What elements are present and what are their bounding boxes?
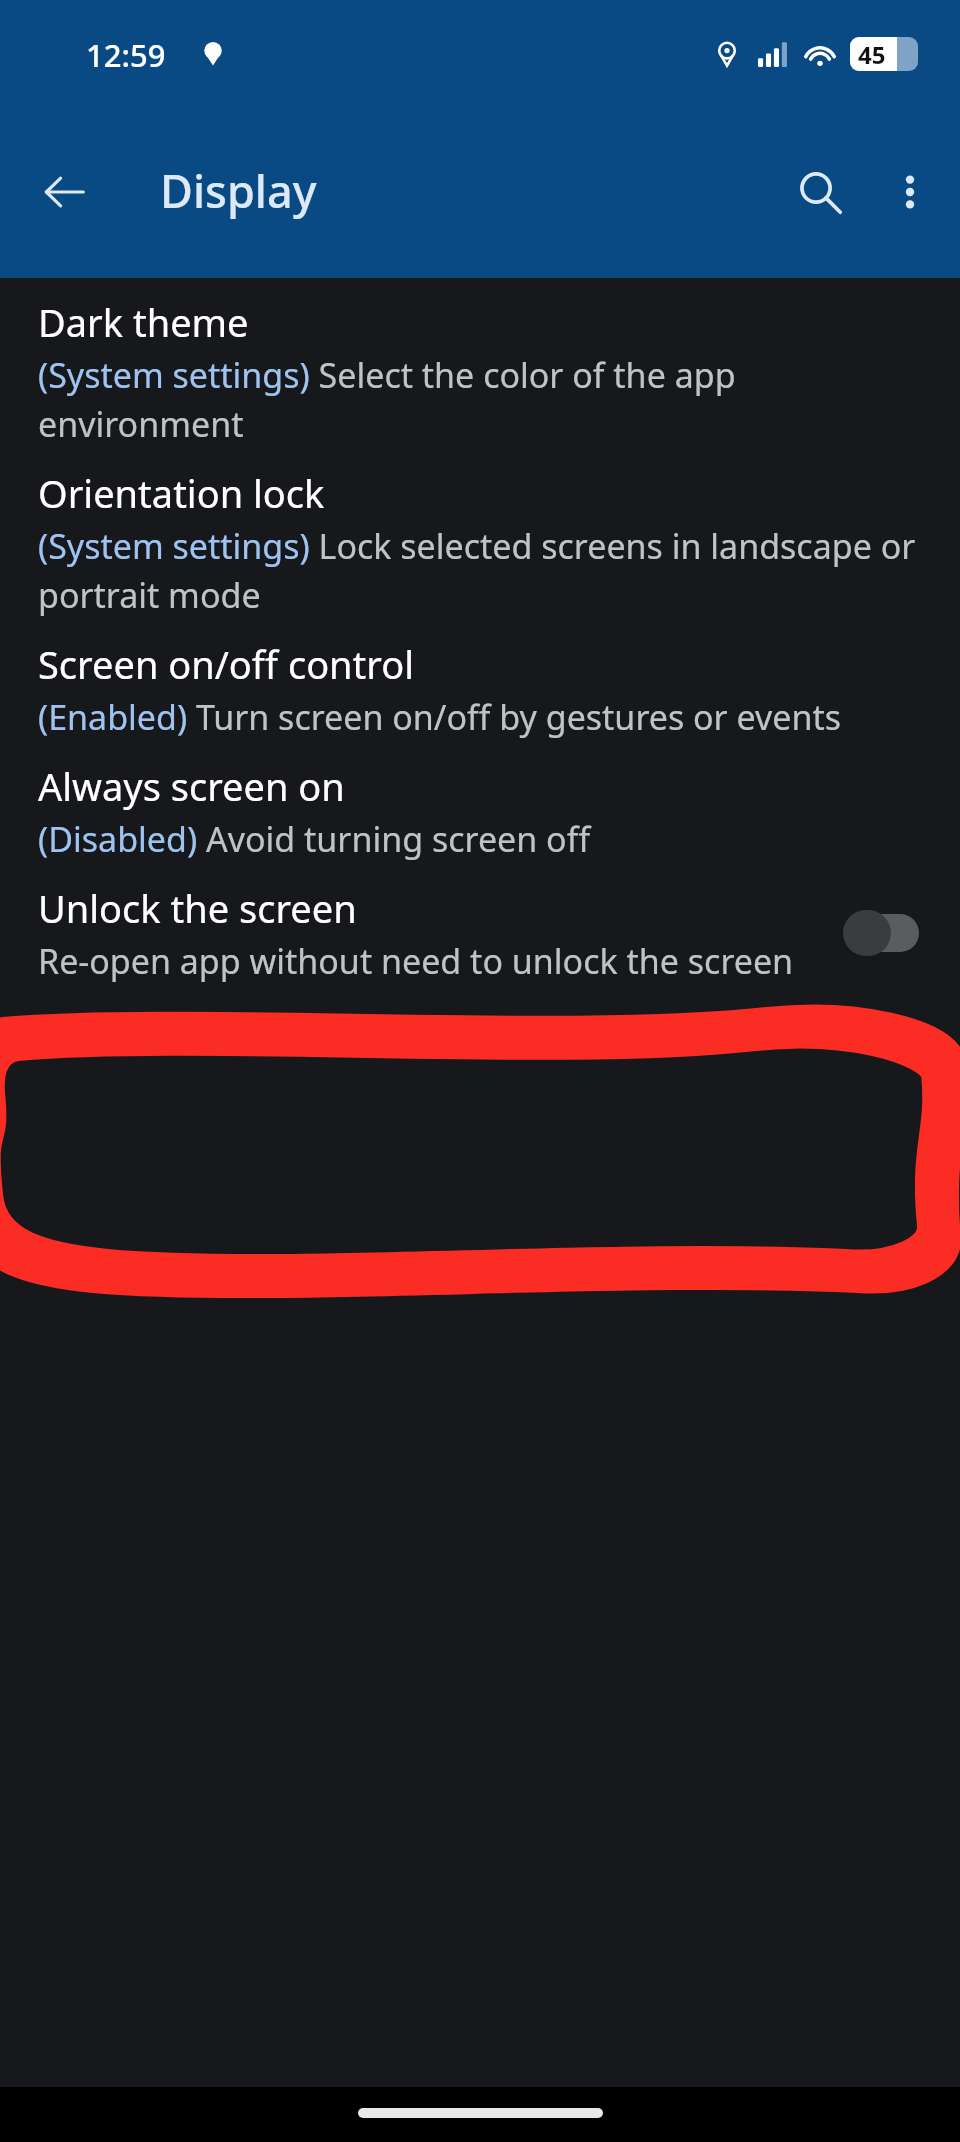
staticText: Dark theme xyxy=(38,296,249,348)
staticText: Unlock the screen xyxy=(38,882,357,934)
staticText: 45 xyxy=(858,38,886,71)
staticText: (Enabled) Turn screen on/off by gestures… xyxy=(38,694,842,740)
staticText: (System settings) Lock selected screens … xyxy=(38,523,930,618)
staticText: Orientation lock xyxy=(38,467,325,519)
staticText: 12:59 xyxy=(86,34,166,76)
staticText: (System settings) Select the color of th… xyxy=(38,352,930,447)
button[interactable]: Always screen on xyxy=(0,754,960,876)
staticText: Always screen on xyxy=(38,760,345,812)
button[interactable]: Dark theme xyxy=(0,290,960,461)
staticText: Screen on/off control xyxy=(38,638,415,690)
staticText: Re-open app without need to unlock the s… xyxy=(38,938,794,984)
button[interactable]: Unlock the screen toggle xyxy=(834,888,930,978)
button[interactable]: Unlock the screen xyxy=(0,876,960,998)
button[interactable]: Search xyxy=(772,144,868,240)
button[interactable]: Screen on/off control xyxy=(0,632,960,754)
button[interactable]: Orientation lock xyxy=(0,461,960,632)
staticText: (Disabled) Avoid turning screen off xyxy=(38,816,591,862)
button[interactable]: Back xyxy=(18,146,110,238)
staticText: Display xyxy=(160,160,317,221)
button[interactable]: More options xyxy=(868,150,952,234)
